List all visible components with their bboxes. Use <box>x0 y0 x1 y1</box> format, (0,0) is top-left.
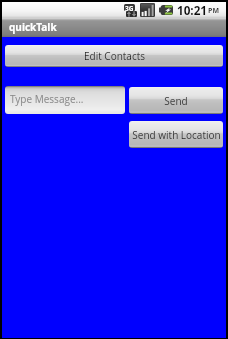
staticText: 10:21 <box>177 2 208 18</box>
staticText: Edit Contacts <box>84 49 145 63</box>
staticText: Type Message... <box>10 92 84 106</box>
button[interactable]: Send with Location <box>129 121 223 148</box>
button[interactable]: Edit Contacts <box>5 45 223 67</box>
staticText: quickTalk <box>9 20 57 34</box>
button[interactable]: Type Message... <box>5 86 125 114</box>
staticText: 3G <box>125 4 134 11</box>
staticText: PM <box>208 6 219 16</box>
button[interactable]: Send <box>129 87 223 114</box>
staticText: Send <box>164 94 188 108</box>
staticText: Send with Location <box>132 128 221 142</box>
